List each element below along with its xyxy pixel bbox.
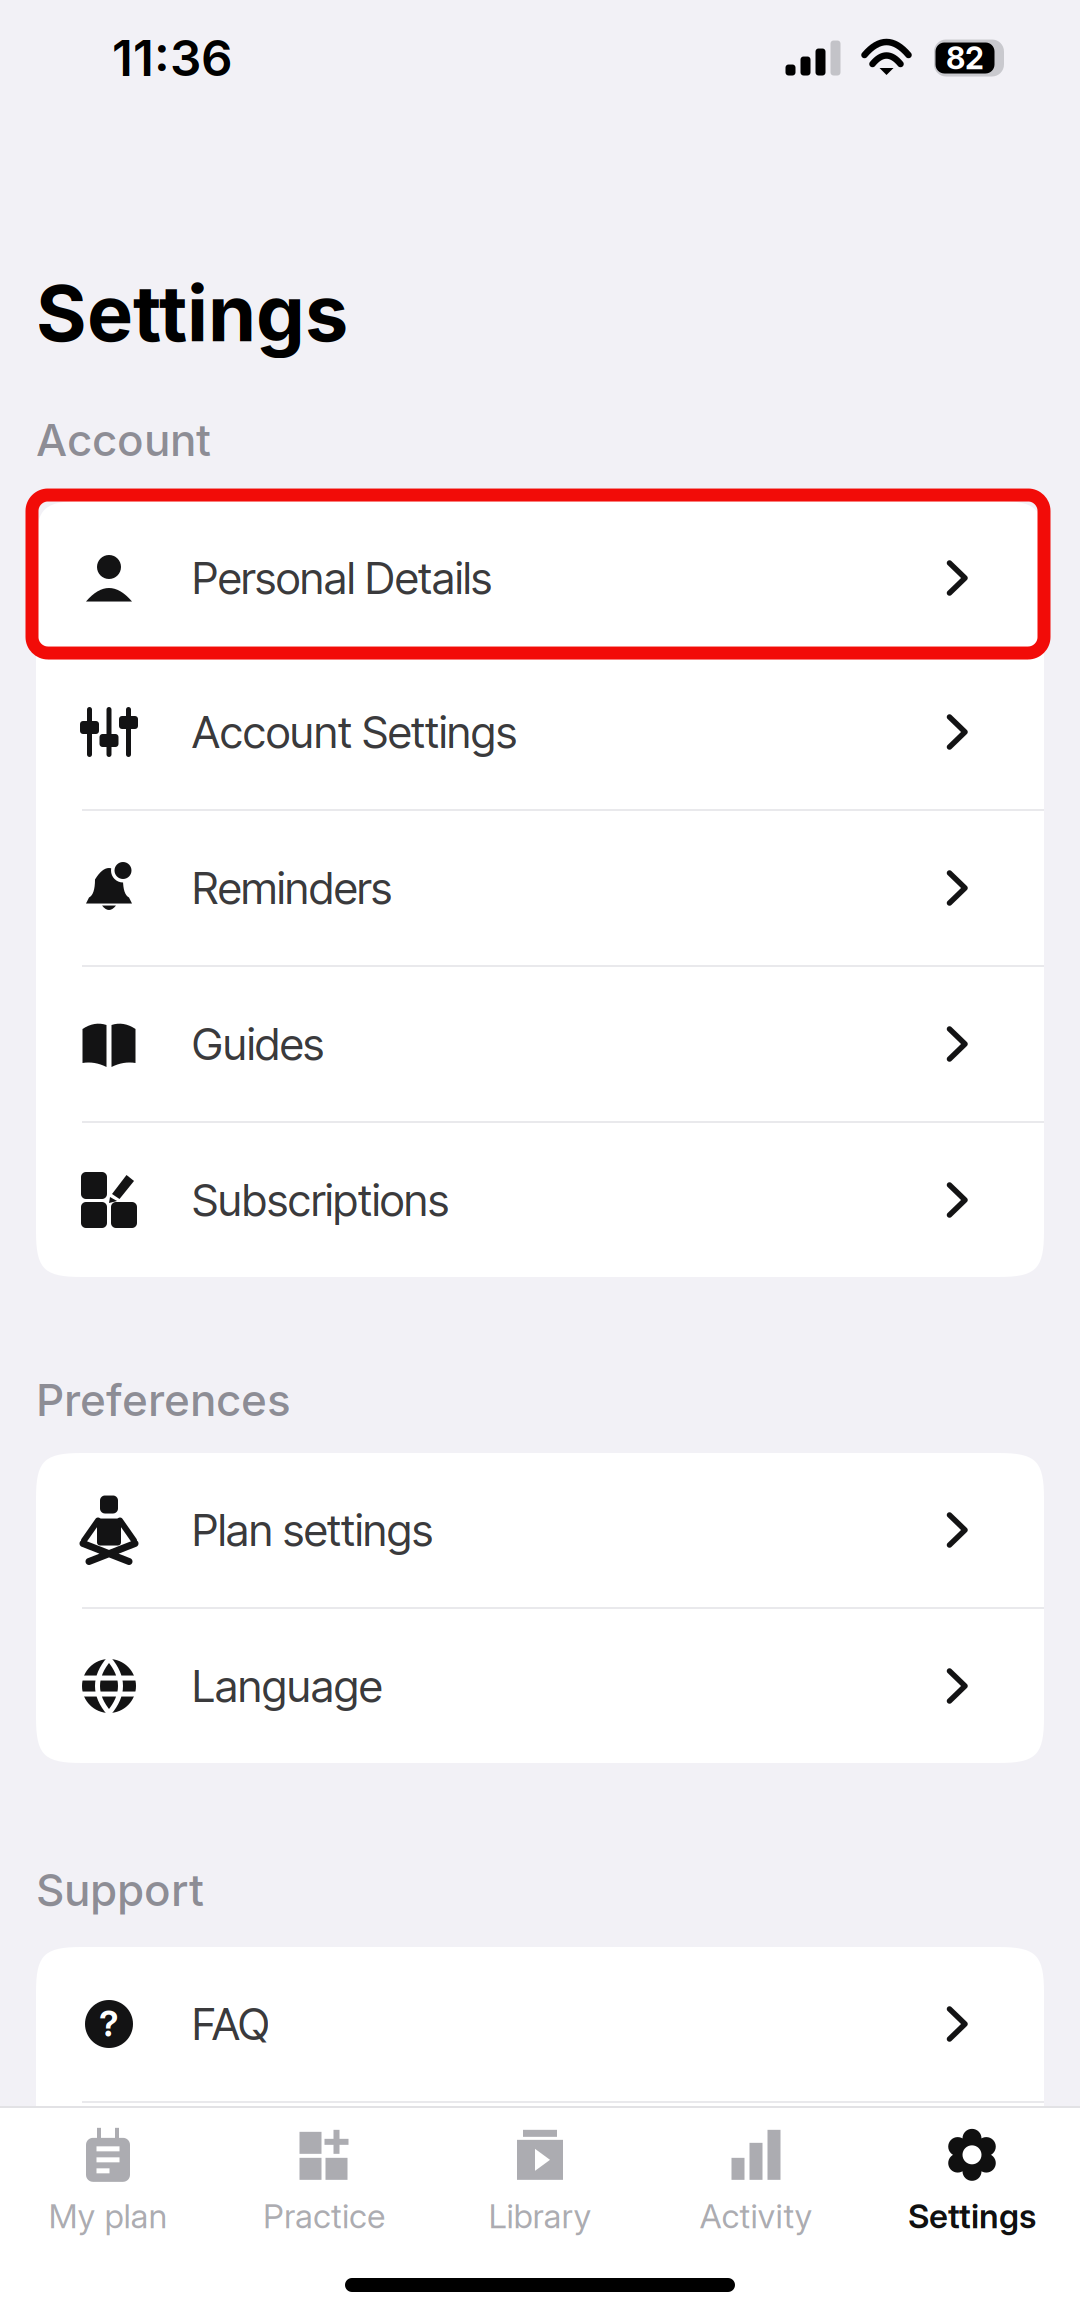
button[interactable]: ? bbox=[36, 1947, 1044, 2101]
staticText: Contact us bbox=[192, 2153, 399, 2207]
button[interactable]: Practice bbox=[216, 2109, 432, 2254]
staticText: Practice bbox=[263, 2196, 385, 2236]
button[interactable]: Activity bbox=[648, 2109, 864, 2254]
staticText: Plan settings bbox=[192, 1503, 433, 1557]
button[interactable]: My plan bbox=[0, 2109, 216, 2254]
button[interactable]: Library bbox=[432, 2109, 648, 2254]
staticText: FAQ bbox=[192, 1997, 269, 2051]
staticText: Preferences bbox=[36, 1373, 291, 1427]
staticText: 11:36 bbox=[112, 28, 233, 88]
button[interactable]: Settings bbox=[864, 2109, 1080, 2254]
button[interactable]: Plan settings bbox=[36, 1453, 1044, 1607]
button[interactable]: Personal Details bbox=[36, 501, 1044, 655]
staticText: Language bbox=[192, 1659, 382, 1713]
button[interactable]: ? bbox=[36, 2103, 1044, 2257]
staticText: Guides bbox=[192, 1017, 324, 1071]
button[interactable]: Language bbox=[36, 1609, 1044, 1763]
staticText: Account bbox=[36, 413, 211, 467]
staticText: ? bbox=[99, 2003, 119, 2045]
button[interactable]: Guides bbox=[36, 967, 1044, 1121]
staticText: 82 bbox=[946, 39, 984, 76]
staticText: Reminders bbox=[192, 861, 392, 915]
staticText: Subscriptions bbox=[192, 1173, 449, 1227]
staticText: Support bbox=[36, 1863, 204, 1917]
button[interactable]: Account Settings bbox=[36, 655, 1044, 809]
staticText: My plan bbox=[48, 2196, 167, 2236]
staticText: Settings bbox=[36, 266, 348, 360]
staticText: Account Settings bbox=[192, 705, 517, 759]
staticText: Personal Details bbox=[192, 551, 492, 605]
staticText: Settings bbox=[908, 2196, 1036, 2236]
button[interactable]: Subscriptions bbox=[36, 1123, 1044, 1277]
staticText: Library bbox=[488, 2196, 591, 2236]
staticText: Activity bbox=[699, 2196, 812, 2236]
button[interactable]: Reminders bbox=[36, 811, 1044, 965]
staticText: ? bbox=[99, 2159, 119, 2201]
